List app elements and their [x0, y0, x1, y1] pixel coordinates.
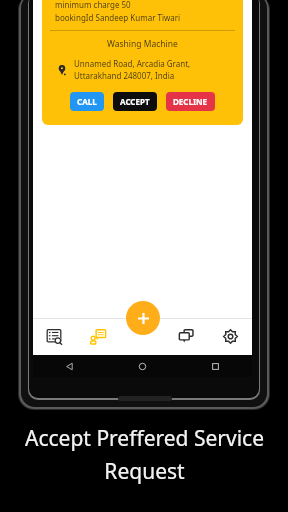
staticText: bookingId Sandeep Kumar Tiwari: [55, 12, 181, 23]
button[interactable]: Settings: [208, 318, 252, 355]
button[interactable]: Chats: [164, 318, 208, 355]
button[interactable]: CALL: [70, 92, 104, 111]
staticText: DECLINE: [173, 96, 208, 107]
staticText: minimum charge 50: [55, 0, 131, 10]
button[interactable]: Requests: [76, 318, 120, 355]
button[interactable]: DECLINE: [166, 92, 215, 111]
staticText: Uttarakhand 248007, India: [74, 70, 175, 81]
staticText: Accept Preffered Service: [25, 424, 264, 453]
staticText: Washing Machine: [107, 38, 178, 50]
staticText: ACCEPT: [120, 96, 150, 107]
button[interactable]: Add: [126, 301, 160, 335]
staticText: Request: [104, 457, 185, 486]
button[interactable]: ACCEPT: [113, 92, 157, 111]
staticText: Unnamed Road, Arcadia Grant,: [74, 58, 191, 69]
staticText: CALL: [77, 96, 97, 107]
button[interactable]: Bookings: [33, 318, 76, 355]
